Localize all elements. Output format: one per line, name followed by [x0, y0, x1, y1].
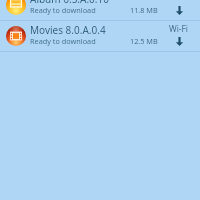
staticText: 11.8 MB [130, 5, 158, 15]
button[interactable]: Download [170, 35, 188, 49]
button[interactable]: Album 6.5.A.0.10 [0, 0, 200, 20]
staticText: Movies 8.0.A.0.4 [30, 23, 106, 37]
staticText: Ready to download [30, 36, 96, 46]
button[interactable]: Movies 8.0.A.0.4 [0, 21, 200, 51]
button[interactable]: Download [170, 4, 188, 18]
staticText: 12.5 MB [130, 36, 158, 46]
staticText: Album 6.5.A.0.10 [30, 0, 109, 6]
staticText: Wi-Fi [169, 23, 188, 34]
staticText: Ready to download [30, 5, 96, 15]
